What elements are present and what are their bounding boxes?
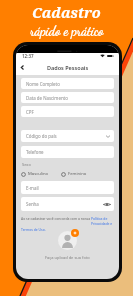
button[interactable]: Data de Nascimento bbox=[21, 92, 114, 103]
button[interactable]: Nome Completo bbox=[21, 78, 114, 89]
button[interactable]: Back bbox=[16, 61, 28, 73]
button[interactable]: Feminino bbox=[61, 170, 87, 178]
staticText: 12:37 bbox=[22, 53, 34, 59]
button[interactable]: Masculino bbox=[21, 170, 49, 178]
staticText: Sexo bbox=[22, 162, 31, 167]
button[interactable]: E-mail bbox=[21, 181, 114, 194]
staticText: Data de Nascimento bbox=[26, 95, 68, 101]
button[interactable]: Código do país bbox=[21, 130, 114, 142]
staticText: E-mail bbox=[26, 185, 39, 191]
button[interactable]: CPF bbox=[21, 106, 114, 117]
staticText: Cadastro bbox=[32, 2, 101, 22]
staticText: Feminino bbox=[68, 171, 87, 177]
staticText: CPF bbox=[26, 109, 34, 115]
staticText: rápido e prático bbox=[30, 23, 104, 39]
staticText: Nome Completo bbox=[26, 81, 60, 87]
staticText: Código do país bbox=[26, 133, 57, 139]
button[interactable]: Upload photo bbox=[58, 231, 77, 250]
staticText: Senha bbox=[26, 201, 39, 207]
button[interactable]: Show password bbox=[102, 200, 111, 209]
staticText: Telefone bbox=[26, 149, 44, 155]
staticText: Ao se cadastrar você concorda com a noss… bbox=[21, 216, 91, 221]
staticText: Dados Pessoais bbox=[47, 64, 89, 71]
button[interactable]: Senha bbox=[21, 197, 114, 211]
button[interactable]: Termos de Uso. bbox=[21, 227, 46, 232]
button[interactable]: Telefone bbox=[21, 146, 114, 158]
staticText: Masculino bbox=[28, 171, 49, 177]
button[interactable]: Política de Privacidade e bbox=[91, 216, 114, 226]
staticText: Faça upload de sua foto bbox=[45, 255, 90, 260]
